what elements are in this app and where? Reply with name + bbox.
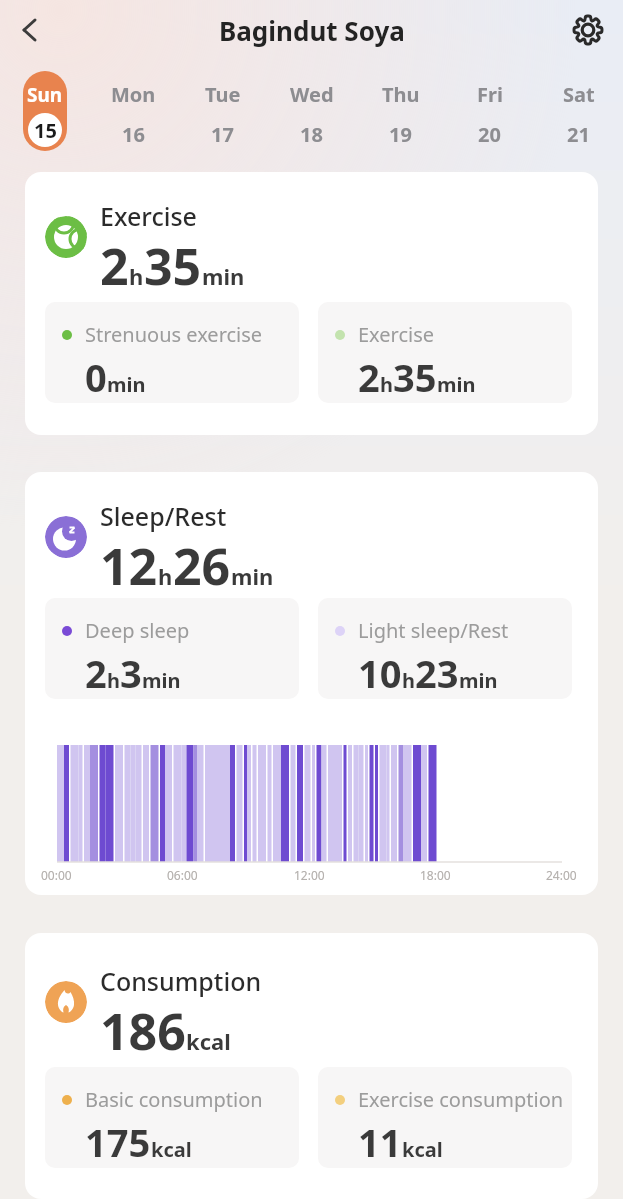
staticText: 20 bbox=[478, 121, 501, 148]
staticText: 10 bbox=[358, 647, 402, 699]
staticText: Strenuous exercise bbox=[85, 321, 263, 348]
staticText: kcal bbox=[186, 1026, 231, 1056]
staticText: 0 bbox=[85, 351, 107, 403]
button[interactable]: Exercise bbox=[25, 172, 598, 435]
staticText: 35 bbox=[393, 351, 437, 403]
staticText: h bbox=[380, 371, 393, 398]
staticText: Light sleep/Rest bbox=[358, 617, 509, 644]
staticText: 23 bbox=[415, 647, 459, 699]
staticText: Bagindut Soya bbox=[219, 13, 405, 48]
staticText: Exercise consumption bbox=[358, 1086, 564, 1113]
staticText: 2 bbox=[358, 351, 380, 403]
staticText: 12 bbox=[100, 532, 158, 593]
staticText: min bbox=[202, 261, 245, 291]
staticText: 16 bbox=[122, 121, 145, 148]
staticText: h bbox=[158, 561, 173, 591]
staticText: Fri bbox=[477, 81, 503, 108]
staticText: Deep sleep bbox=[85, 617, 190, 644]
button[interactable] bbox=[18, 17, 44, 43]
staticText: kcal bbox=[151, 1136, 192, 1163]
staticText: Sat bbox=[563, 81, 595, 108]
staticText: 00:00 bbox=[41, 867, 72, 883]
staticText: 12:00 bbox=[294, 867, 325, 883]
staticText: Tue bbox=[205, 81, 241, 108]
button[interactable]: Consumption bbox=[25, 933, 598, 1199]
staticText: Sleep/Rest bbox=[100, 499, 227, 533]
button[interactable]: Deep sleep bbox=[45, 598, 299, 699]
staticText: 35 bbox=[144, 232, 202, 293]
button[interactable]: Thu bbox=[356, 60, 445, 152]
staticText: 17 bbox=[211, 121, 234, 148]
staticText: min bbox=[437, 371, 476, 398]
button[interactable]: Wed bbox=[267, 60, 356, 152]
staticText: 21 bbox=[567, 121, 590, 148]
staticText: h bbox=[107, 667, 120, 694]
staticText: 06:00 bbox=[167, 867, 198, 883]
staticText: 19 bbox=[389, 121, 412, 148]
staticText: Consumption bbox=[100, 964, 262, 998]
button[interactable]: Basic consumption bbox=[45, 1067, 299, 1168]
button[interactable]: Exercise consumption bbox=[318, 1067, 572, 1168]
button[interactable]: Light sleep/Rest bbox=[318, 598, 572, 699]
staticText: 2 bbox=[100, 232, 129, 293]
staticText: 18:00 bbox=[420, 867, 451, 883]
staticText: Exercise bbox=[358, 321, 435, 348]
staticText: kcal bbox=[402, 1136, 443, 1163]
button[interactable] bbox=[572, 14, 604, 46]
staticText: Thu bbox=[382, 81, 420, 108]
button[interactable]: Fri bbox=[445, 60, 534, 152]
staticText: Wed bbox=[290, 81, 334, 108]
staticText: 26 bbox=[173, 532, 231, 593]
staticText: min bbox=[231, 561, 274, 591]
button[interactable]: Sun bbox=[23, 71, 67, 151]
staticText: 186 bbox=[100, 997, 186, 1058]
staticText: 15 bbox=[34, 117, 57, 144]
staticText: 11 bbox=[358, 1116, 402, 1168]
staticText: 2 bbox=[85, 647, 107, 699]
staticText: 175 bbox=[85, 1116, 151, 1168]
button[interactable]: Mon bbox=[89, 60, 178, 152]
button[interactable]: Sat bbox=[534, 60, 623, 152]
staticText: 3 bbox=[120, 647, 142, 699]
staticText: 24:00 bbox=[546, 867, 577, 883]
staticText: Mon bbox=[111, 81, 156, 108]
button[interactable]: Exercise bbox=[318, 302, 572, 403]
staticText: Sun bbox=[27, 82, 63, 108]
button[interactable]: Sleep/Rest bbox=[25, 472, 598, 895]
staticText: min bbox=[107, 371, 146, 398]
staticText: h bbox=[129, 261, 144, 291]
staticText: h bbox=[402, 667, 415, 694]
staticText: Exercise bbox=[100, 199, 197, 233]
button[interactable]: Strenuous exercise bbox=[45, 302, 299, 403]
staticText: 18 bbox=[300, 121, 323, 148]
staticText: min bbox=[142, 667, 181, 694]
button[interactable]: Tue bbox=[178, 60, 267, 152]
staticText: min bbox=[459, 667, 498, 694]
staticText: Basic consumption bbox=[85, 1086, 263, 1113]
